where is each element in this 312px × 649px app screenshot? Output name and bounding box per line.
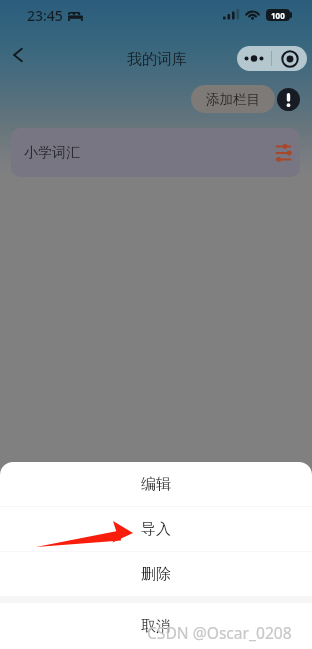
- staticText: 添加栏目: [206, 91, 260, 108]
- button[interactable]: Screen recorder: [272, 46, 307, 71]
- button[interactable]: 导入: [0, 507, 312, 551]
- staticText: 我的词库: [127, 50, 187, 69]
- button[interactable]: 小学词汇: [11, 128, 300, 177]
- staticText: 编辑: [141, 475, 171, 494]
- staticText: 删除: [141, 565, 171, 584]
- staticText: 导入: [141, 520, 171, 539]
- button[interactable]: 删除: [0, 552, 312, 596]
- staticText: 小学词汇: [24, 144, 80, 162]
- button[interactable]: Back: [1, 38, 34, 71]
- button[interactable]: 添加栏目: [191, 85, 275, 113]
- staticText: 100: [271, 10, 285, 21]
- staticText: 取消: [141, 617, 171, 636]
- button[interactable]: Info: [277, 88, 300, 111]
- staticText: 23:45: [27, 6, 63, 25]
- staticText: CSDN @Oscar_0208: [147, 622, 292, 643]
- button[interactable]: 取消: [0, 603, 312, 649]
- button[interactable]: More: [237, 46, 271, 71]
- button[interactable]: 编辑: [0, 462, 312, 506]
